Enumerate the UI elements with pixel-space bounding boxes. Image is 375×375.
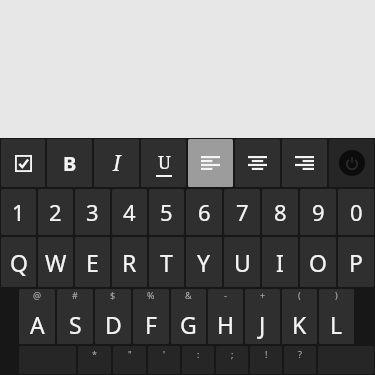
staticText: & xyxy=(185,289,192,301)
button[interactable]: ! xyxy=(250,346,282,374)
button[interactable]: 9 xyxy=(300,189,336,235)
button[interactable]: $ xyxy=(95,289,131,344)
button[interactable]: * xyxy=(78,346,111,374)
button[interactable]: ) xyxy=(319,289,354,344)
button[interactable]: 1 xyxy=(1,189,36,235)
button[interactable]: & xyxy=(171,289,206,344)
staticText: : xyxy=(197,348,200,360)
button[interactable]: - xyxy=(208,289,243,344)
staticText: ( xyxy=(298,289,301,301)
staticText: - xyxy=(224,289,227,301)
button[interactable]: " xyxy=(113,346,146,374)
staticText: J xyxy=(259,309,266,340)
staticText: * xyxy=(92,348,97,360)
staticText: O xyxy=(309,247,327,278)
staticText: H xyxy=(217,309,235,340)
button[interactable]: ? xyxy=(284,346,316,374)
staticText: + xyxy=(260,289,266,301)
button[interactable]: I xyxy=(262,237,298,287)
staticText: ) xyxy=(335,289,338,301)
staticText: 6 xyxy=(198,197,211,227)
button[interactable]: Italic xyxy=(94,139,139,187)
staticText: D xyxy=(105,309,122,340)
button[interactable]: 2 xyxy=(38,189,73,235)
button[interactable]: : xyxy=(182,346,214,374)
staticText: 1 xyxy=(12,197,25,227)
button[interactable]: ; xyxy=(216,346,248,374)
button[interactable]: 0 xyxy=(338,189,374,235)
button[interactable]: Align center xyxy=(235,139,280,187)
button[interactable]: Align right xyxy=(282,139,327,187)
staticText: B xyxy=(63,150,77,177)
staticText: U xyxy=(158,150,171,175)
staticText: I xyxy=(276,247,284,278)
staticText: % xyxy=(147,289,155,301)
staticText: ; xyxy=(231,348,234,360)
button[interactable]: 8 xyxy=(262,189,298,235)
staticText: @ xyxy=(33,289,42,301)
button[interactable]: 3 xyxy=(75,189,110,235)
staticText: U xyxy=(234,247,251,278)
staticText: Q xyxy=(10,247,28,278)
staticText: 9 xyxy=(312,197,325,227)
button[interactable]: Underline xyxy=(141,139,186,187)
staticText: T xyxy=(160,247,173,278)
staticText: 0 xyxy=(350,197,363,227)
button[interactable]: E xyxy=(75,237,110,287)
staticText: 8 xyxy=(274,197,287,227)
button[interactable]: 4 xyxy=(112,189,147,235)
button[interactable]: B xyxy=(47,139,92,187)
staticText: S xyxy=(69,309,82,340)
staticText: " xyxy=(128,348,132,360)
staticText: E xyxy=(86,247,99,278)
button[interactable]: 7 xyxy=(224,189,260,235)
button[interactable]: ' xyxy=(148,346,180,374)
staticText: 4 xyxy=(123,197,136,227)
button[interactable]: O xyxy=(300,237,336,287)
button[interactable]: R xyxy=(112,237,147,287)
button[interactable]: Y xyxy=(186,237,222,287)
button[interactable]: Power xyxy=(329,139,374,187)
staticText: A xyxy=(30,309,45,340)
staticText: ' xyxy=(163,348,166,360)
button[interactable]: P xyxy=(338,237,374,287)
staticText: # xyxy=(72,289,78,301)
staticText: Y xyxy=(197,247,211,278)
staticText: K xyxy=(292,309,307,340)
button[interactable]: 6 xyxy=(186,189,222,235)
staticText: 3 xyxy=(86,197,99,227)
staticText: 7 xyxy=(236,197,249,227)
button[interactable]: ( xyxy=(282,289,317,344)
staticText: $ xyxy=(110,289,116,301)
button[interactable]: 5 xyxy=(149,189,184,235)
button[interactable]: Q xyxy=(1,237,36,287)
button[interactable]: % xyxy=(133,289,169,344)
staticText: ? xyxy=(298,348,302,360)
staticText: I xyxy=(113,149,121,178)
staticText: W xyxy=(45,247,67,278)
staticText: 5 xyxy=(160,197,173,227)
button[interactable]: Checkbox xyxy=(1,139,45,187)
staticText: R xyxy=(122,247,137,278)
staticText: L xyxy=(330,309,343,340)
button[interactable]: W xyxy=(38,237,73,287)
staticText: G xyxy=(180,309,197,340)
staticText: 2 xyxy=(49,197,62,227)
staticText: ! xyxy=(265,348,268,360)
button[interactable]: # xyxy=(57,289,93,344)
button[interactable]: Align left xyxy=(188,139,233,187)
button[interactable]: @ xyxy=(19,289,55,344)
button[interactable]: + xyxy=(245,289,280,344)
button[interactable]: T xyxy=(149,237,184,287)
staticText: P xyxy=(349,247,363,278)
button[interactable]: U xyxy=(224,237,260,287)
staticText: F xyxy=(145,309,157,340)
